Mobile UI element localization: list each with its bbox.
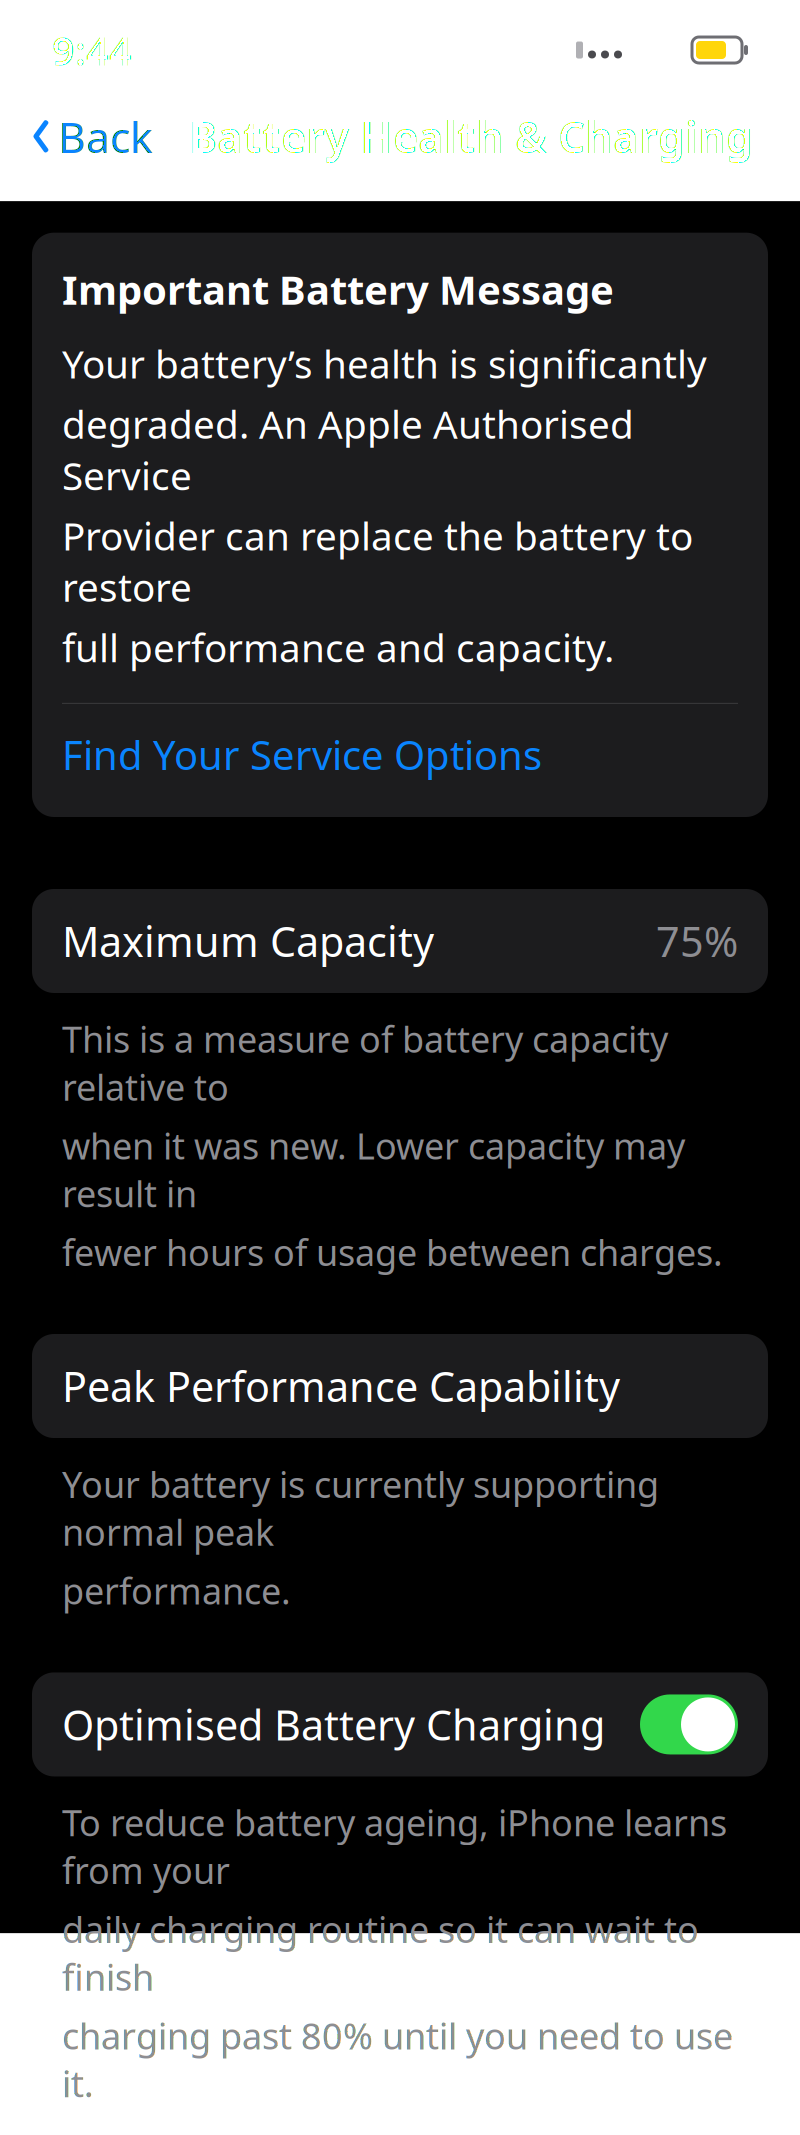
staticText: full performance and capacity. xyxy=(62,621,614,673)
staticText: Provider can replace the battery to rest… xyxy=(62,510,693,612)
staticText: Find Your Service Options xyxy=(62,728,542,781)
button[interactable]: Maximum Capacity xyxy=(32,889,768,993)
staticText: Your battery is currently supporting nor… xyxy=(62,1460,659,1556)
staticText: Important Battery Message xyxy=(62,263,614,316)
staticText: daily charging routine so it can wait to… xyxy=(62,1905,699,2001)
staticText: Battery Health & Charging xyxy=(189,108,753,165)
staticText: fewer hours of usage between charges. xyxy=(62,1228,723,1276)
staticText: This is a measure of battery capacity re… xyxy=(62,1015,668,1111)
button[interactable]: Optimised Battery Charging xyxy=(32,1672,768,1776)
staticText: 75% xyxy=(656,913,738,968)
staticText: performance. xyxy=(62,1567,291,1614)
staticText: degraded. An Apple Authorised Service xyxy=(62,398,634,501)
staticText: Optimised Battery Charging xyxy=(62,1697,605,1752)
button[interactable]: Peak Performance Capability xyxy=(32,1334,768,1438)
staticText: To reduce battery ageing, iPhone learns … xyxy=(62,1798,727,1894)
staticText: when it was new. Lower capacity may resu… xyxy=(62,1122,685,1217)
button[interactable]: Find Your Service Options xyxy=(62,704,738,805)
button[interactable]: Back xyxy=(14,98,171,175)
staticText: charging past 80% until you need to use … xyxy=(62,2012,733,2107)
staticText: Maximum Capacity xyxy=(62,913,434,968)
staticText: Your battery’s health is significantly xyxy=(62,338,707,389)
staticText: Peak Performance Capability xyxy=(62,1359,620,1413)
staticText: 9:44 xyxy=(52,23,132,76)
staticText: Back xyxy=(58,108,153,165)
